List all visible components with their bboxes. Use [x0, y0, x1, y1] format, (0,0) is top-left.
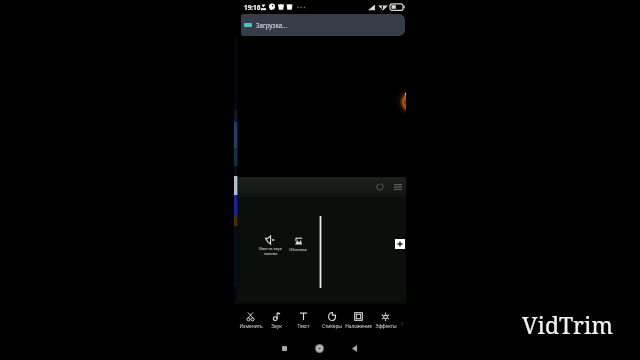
button[interactable]: Home: [312, 341, 326, 355]
button[interactable]: Наложение: [345, 304, 372, 333]
button[interactable]: Текст: [290, 304, 317, 333]
staticText: Текст: [297, 323, 310, 330]
button[interactable]: Back: [347, 341, 361, 355]
button[interactable]: Изменить: [237, 304, 264, 333]
staticText: Наложение: [345, 323, 372, 330]
staticText: Звук: [271, 323, 282, 330]
button[interactable]: Эффекты: [372, 304, 399, 333]
button[interactable]: Add clip: [395, 239, 405, 249]
staticText: Изменить: [239, 323, 263, 330]
staticText: Стикеры: [322, 323, 342, 330]
button[interactable]: Обложка: [284, 236, 312, 252]
button[interactable]: More options: [391, 180, 405, 194]
staticText: Обложка: [289, 247, 307, 252]
staticText: Загрузка...: [256, 21, 288, 29]
staticText: VidTrim: [522, 309, 614, 340]
staticText: Ввести звук заново: [259, 246, 282, 256]
staticText: 19:16: [244, 3, 261, 12]
button[interactable]: Загрузка...: [241, 14, 405, 36]
button[interactable]: Стикеры: [318, 304, 345, 333]
button[interactable]: Undo: [373, 180, 387, 194]
staticText: Эффекты: [375, 323, 397, 330]
button[interactable]: Ввести звук заново: [256, 235, 284, 256]
button[interactable]: Звук: [263, 304, 290, 333]
button[interactable]: Recents: [277, 341, 291, 355]
staticText: С: [401, 321, 404, 327]
button[interactable]: More tools: [399, 304, 411, 333]
